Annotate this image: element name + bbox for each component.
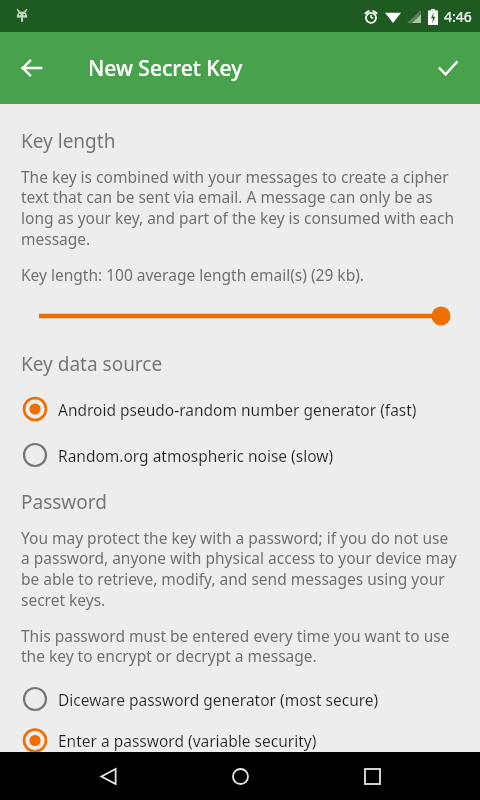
staticText: Password bbox=[21, 489, 107, 515]
staticText: Diceware password generator (most secure… bbox=[58, 689, 379, 710]
button[interactable]: Save bbox=[424, 44, 472, 92]
staticText: Key length bbox=[21, 128, 116, 154]
staticText: Key length: 100 average length email(s) … bbox=[21, 264, 364, 285]
staticText: This password must be entered every time… bbox=[21, 625, 459, 667]
button[interactable]: Back bbox=[8, 44, 56, 92]
staticText: Android pseudo-random number generator (… bbox=[58, 399, 417, 420]
button[interactable]: Recents bbox=[348, 752, 396, 800]
button[interactable]: Home bbox=[216, 752, 264, 800]
staticText: Random.org atmospheric noise (slow) bbox=[58, 445, 334, 466]
button[interactable]: Random.org atmospheric noise (slow) bbox=[21, 439, 459, 471]
staticText: 4:46 bbox=[444, 7, 472, 26]
staticText: Enter a password (variable security) bbox=[58, 730, 317, 751]
button[interactable]: Android pseudo-random number generator (… bbox=[21, 393, 459, 425]
button[interactable]: Back bbox=[84, 752, 132, 800]
staticText: Key data source bbox=[21, 351, 163, 377]
button[interactable]: Key length slider bbox=[21, 305, 459, 327]
button[interactable]: Enter a password (variable security) bbox=[21, 729, 459, 752]
staticText: New Secret Key bbox=[88, 54, 243, 83]
button[interactable]: Diceware password generator (most secure… bbox=[21, 683, 459, 715]
staticText: You may protect the key with a password;… bbox=[21, 527, 459, 611]
staticText: The key is combined with your messages t… bbox=[21, 166, 459, 250]
